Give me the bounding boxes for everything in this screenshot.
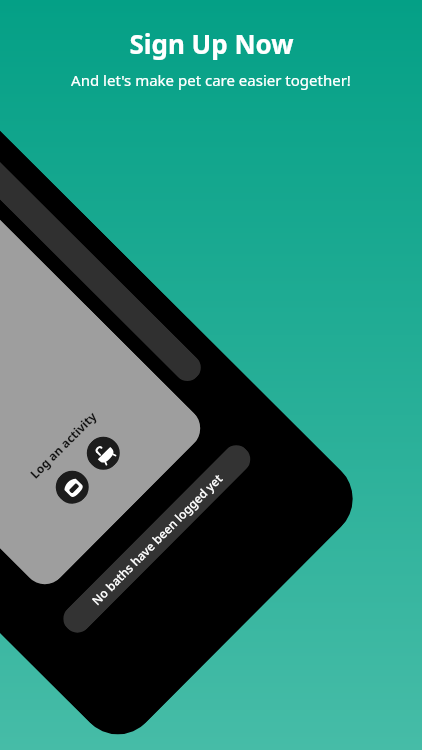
button[interactable]: Log a grooming session — [49, 464, 96, 510]
staticText: Sign Up Now — [129, 26, 294, 61]
staticText: Log an activity — [26, 408, 100, 481]
staticText: And let's make pet care easier together! — [71, 70, 351, 90]
button[interactable]: Log a bath — [80, 430, 127, 476]
staticText: No baths have been logged yet — [88, 470, 226, 608]
